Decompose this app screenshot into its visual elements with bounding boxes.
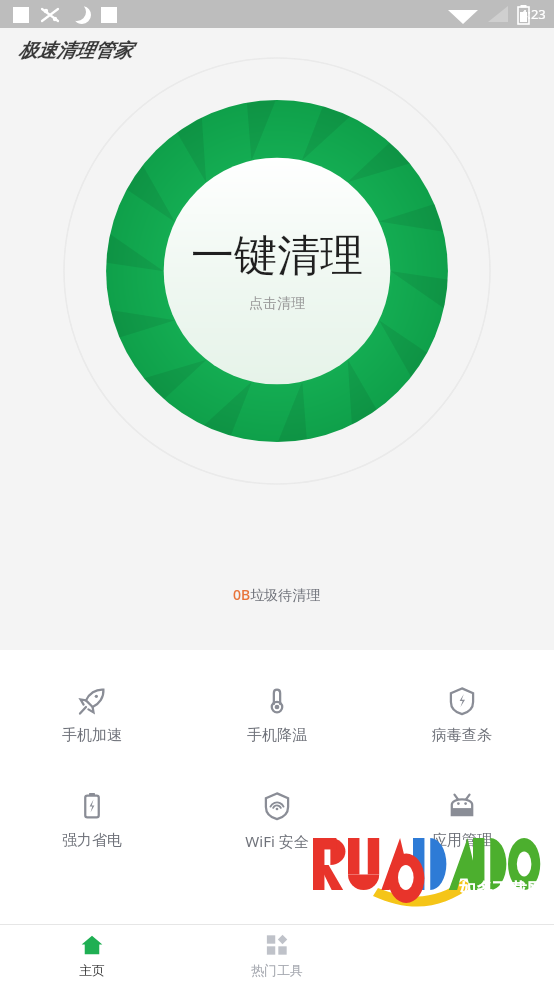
button[interactable]: 强力省电 bbox=[0, 787, 184, 854]
button[interactable]: 手机降温 bbox=[184, 682, 369, 749]
staticText: 4:23 bbox=[520, 5, 546, 23]
staticText: 点击清理 bbox=[249, 295, 305, 313]
button[interactable]: 热门工具 bbox=[184, 925, 369, 986]
staticText: 一键清理 bbox=[191, 229, 363, 283]
staticText: 热门工具 bbox=[251, 962, 303, 978]
staticText: 如多下载网 bbox=[459, 879, 544, 900]
staticText: 手机加速 bbox=[62, 726, 122, 745]
button[interactable]: 一键清理 bbox=[62, 56, 492, 486]
button[interactable]: 病毒查杀 bbox=[369, 682, 554, 749]
button[interactable]: WiFi 安全 bbox=[184, 787, 369, 855]
staticText: 强力省电 bbox=[62, 831, 122, 850]
staticText: 0B垃圾待清理 bbox=[233, 585, 321, 604]
staticText: 极速清理管家 bbox=[18, 39, 132, 63]
staticText: WiFi 安全 bbox=[245, 831, 309, 851]
staticText: 主页 bbox=[79, 962, 105, 978]
staticText: 手机降温 bbox=[247, 726, 307, 745]
button[interactable]: 主页 bbox=[0, 925, 184, 986]
button[interactable]: 手机加速 bbox=[0, 682, 184, 749]
staticText: 应用管理 bbox=[432, 831, 492, 850]
staticText: 病毒查杀 bbox=[432, 726, 492, 745]
button[interactable]: 应用管理 bbox=[369, 787, 554, 854]
